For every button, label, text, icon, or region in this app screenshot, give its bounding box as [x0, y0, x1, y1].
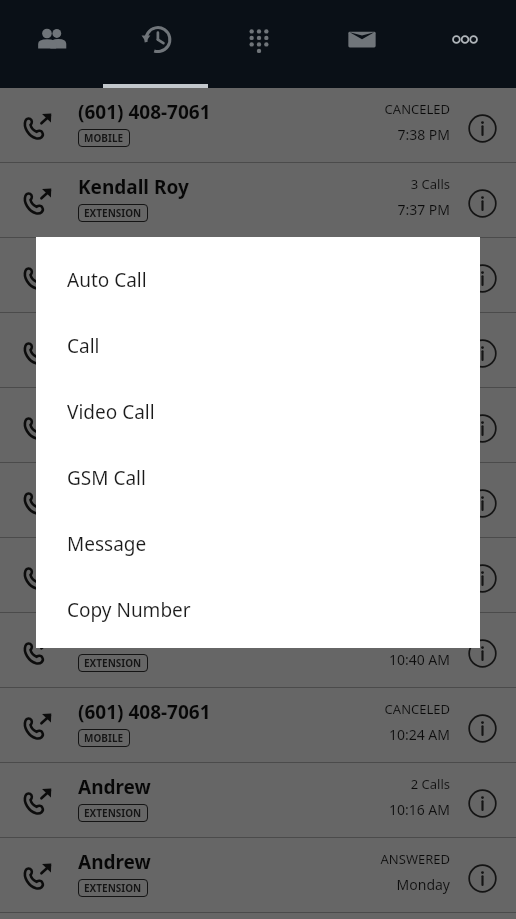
button[interactable]: Recents	[104, 0, 207, 88]
button[interactable]: More	[413, 0, 516, 88]
staticText: Auto Call	[67, 267, 147, 293]
button[interactable]: Kendall Roy	[0, 538, 516, 613]
staticText: 2 Calls	[410, 775, 450, 793]
staticText: Andrew	[78, 399, 151, 425]
staticText: Kendall Roy	[78, 174, 189, 200]
button[interactable]: (601) 408-7061	[0, 463, 516, 538]
staticText: Monday	[396, 875, 450, 894]
button[interactable]: Call details	[467, 113, 498, 144]
staticText: EXTENSION	[84, 806, 142, 820]
staticText: Andrew	[78, 624, 151, 650]
staticText: (601) 408-7061	[78, 99, 211, 125]
button[interactable]: Andrew	[0, 613, 516, 688]
staticText: ANSWERED	[380, 850, 450, 868]
staticText: GSM Call	[67, 465, 146, 491]
button[interactable]: Messages	[310, 0, 413, 88]
staticText: EXTENSION	[84, 206, 142, 220]
button[interactable]: (601) 408-7061	[0, 88, 516, 163]
staticText: (601) 408-7061	[78, 474, 211, 500]
button[interactable]: Call details	[467, 788, 498, 819]
staticText: 10:16 AM	[388, 800, 450, 819]
staticText: Kendall Roy	[78, 324, 189, 350]
button[interactable]: Kendall Roy	[0, 313, 516, 388]
button[interactable]: Call details	[467, 188, 498, 219]
staticText: (601) 408-7061	[78, 249, 211, 275]
button[interactable]: Dialpad	[207, 0, 310, 88]
button[interactable]: Andrew	[0, 388, 516, 463]
staticText: EXTENSION	[84, 881, 142, 895]
staticText: Andrew	[78, 774, 151, 800]
staticText: Andrew	[78, 849, 151, 875]
button[interactable]: Call details	[467, 563, 498, 594]
staticText: MOBILE	[84, 731, 124, 745]
button[interactable]: Call details	[467, 713, 498, 744]
button[interactable]: (601) 408-7061	[0, 238, 516, 313]
staticText: (601) 408-7061	[78, 699, 211, 725]
button[interactable]: Auto Call	[36, 247, 480, 313]
staticText: Video Call	[67, 399, 155, 425]
button[interactable]: Contacts	[0, 0, 104, 88]
button[interactable]: Call details	[467, 863, 498, 894]
staticText: 10:24 AM	[388, 725, 450, 744]
button[interactable]: Call details	[467, 638, 498, 669]
button[interactable]: Call details	[467, 263, 498, 294]
button[interactable]: Andrew	[0, 838, 516, 913]
staticText: Copy Number	[67, 597, 191, 623]
button[interactable]: Video Call	[36, 379, 480, 445]
button[interactable]: Message	[36, 511, 480, 577]
staticText: CANCELED	[384, 700, 450, 718]
staticText: MOBILE	[84, 131, 124, 145]
staticText: Message	[67, 531, 147, 557]
staticText: MOBILE	[84, 281, 124, 295]
staticText: CANCELED	[384, 100, 450, 118]
staticText: 10:40 AM	[388, 650, 450, 669]
button[interactable]: Call details	[467, 413, 498, 444]
button[interactable]: Call	[36, 313, 480, 379]
button[interactable]: GSM Call	[36, 445, 480, 511]
staticText: Call	[67, 333, 100, 359]
staticText: 3 Calls	[410, 175, 450, 193]
staticText: 7:37 PM	[397, 200, 450, 219]
button[interactable]: Call details	[467, 488, 498, 519]
button[interactable]: (601) 408-7061	[0, 688, 516, 763]
button[interactable]: Kendall Roy	[0, 163, 516, 238]
button[interactable]: Call details	[467, 338, 498, 369]
staticText: EXTENSION	[84, 656, 142, 670]
staticText: Kendall Roy	[78, 549, 189, 575]
staticText: 7:38 PM	[397, 125, 450, 144]
button[interactable]: Copy Number	[36, 577, 480, 643]
button[interactable]: Andrew	[0, 763, 516, 838]
